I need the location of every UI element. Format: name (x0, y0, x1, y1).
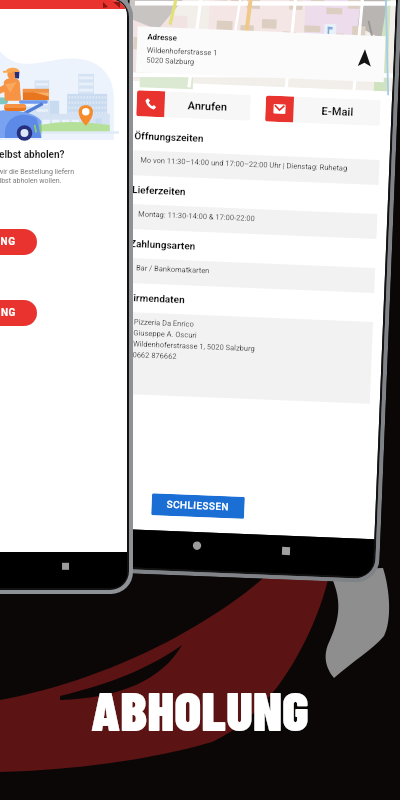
button[interactable]: Anrufen (136, 90, 251, 121)
staticText: SCHLIESSEN (166, 499, 230, 513)
staticText: Mo von 11:30–14:00 und 17:00–22:00 Uhr |… (140, 155, 348, 173)
staticText: Firmendaten (128, 292, 185, 306)
staticText: Öffnungszeiten (134, 130, 204, 145)
staticText: E-Mail (321, 105, 354, 119)
staticText: ABHOLUNG (91, 676, 309, 742)
staticText: Bar / Bankomatkarten (136, 263, 210, 275)
staticText: LIEFERUNG (0, 236, 16, 248)
staticText: 5020 Salzburg (146, 56, 194, 66)
staticText: Liefern oder selbst abholen? (0, 149, 65, 161)
staticText: Montag: 11:30-14:00 & 17:00-22:00 (138, 209, 255, 223)
staticText: Pizzeria Da Enrico Giuseppe A. Oscuri Wi… (132, 317, 256, 364)
button[interactable]: E-Mail (265, 95, 381, 126)
staticText: Bitte wählen Sie ob wir die Bestellung l… (0, 168, 75, 185)
button[interactable]: Navigate (354, 48, 375, 69)
staticText: Lieferzeiten (132, 184, 186, 198)
staticText: Zahlungsarten (130, 238, 196, 253)
button[interactable]: LIEFERUNG (0, 229, 37, 255)
button[interactable]: SCHLIESSEN (166, 499, 230, 513)
staticText: Adresse (147, 33, 177, 43)
staticText: Anrufen (187, 99, 228, 114)
button[interactable]: ABHOLUNG (0, 300, 37, 326)
staticText: ABHOLUNG (0, 307, 16, 319)
staticText: Wildenhoferstrasse 1 (147, 46, 218, 57)
